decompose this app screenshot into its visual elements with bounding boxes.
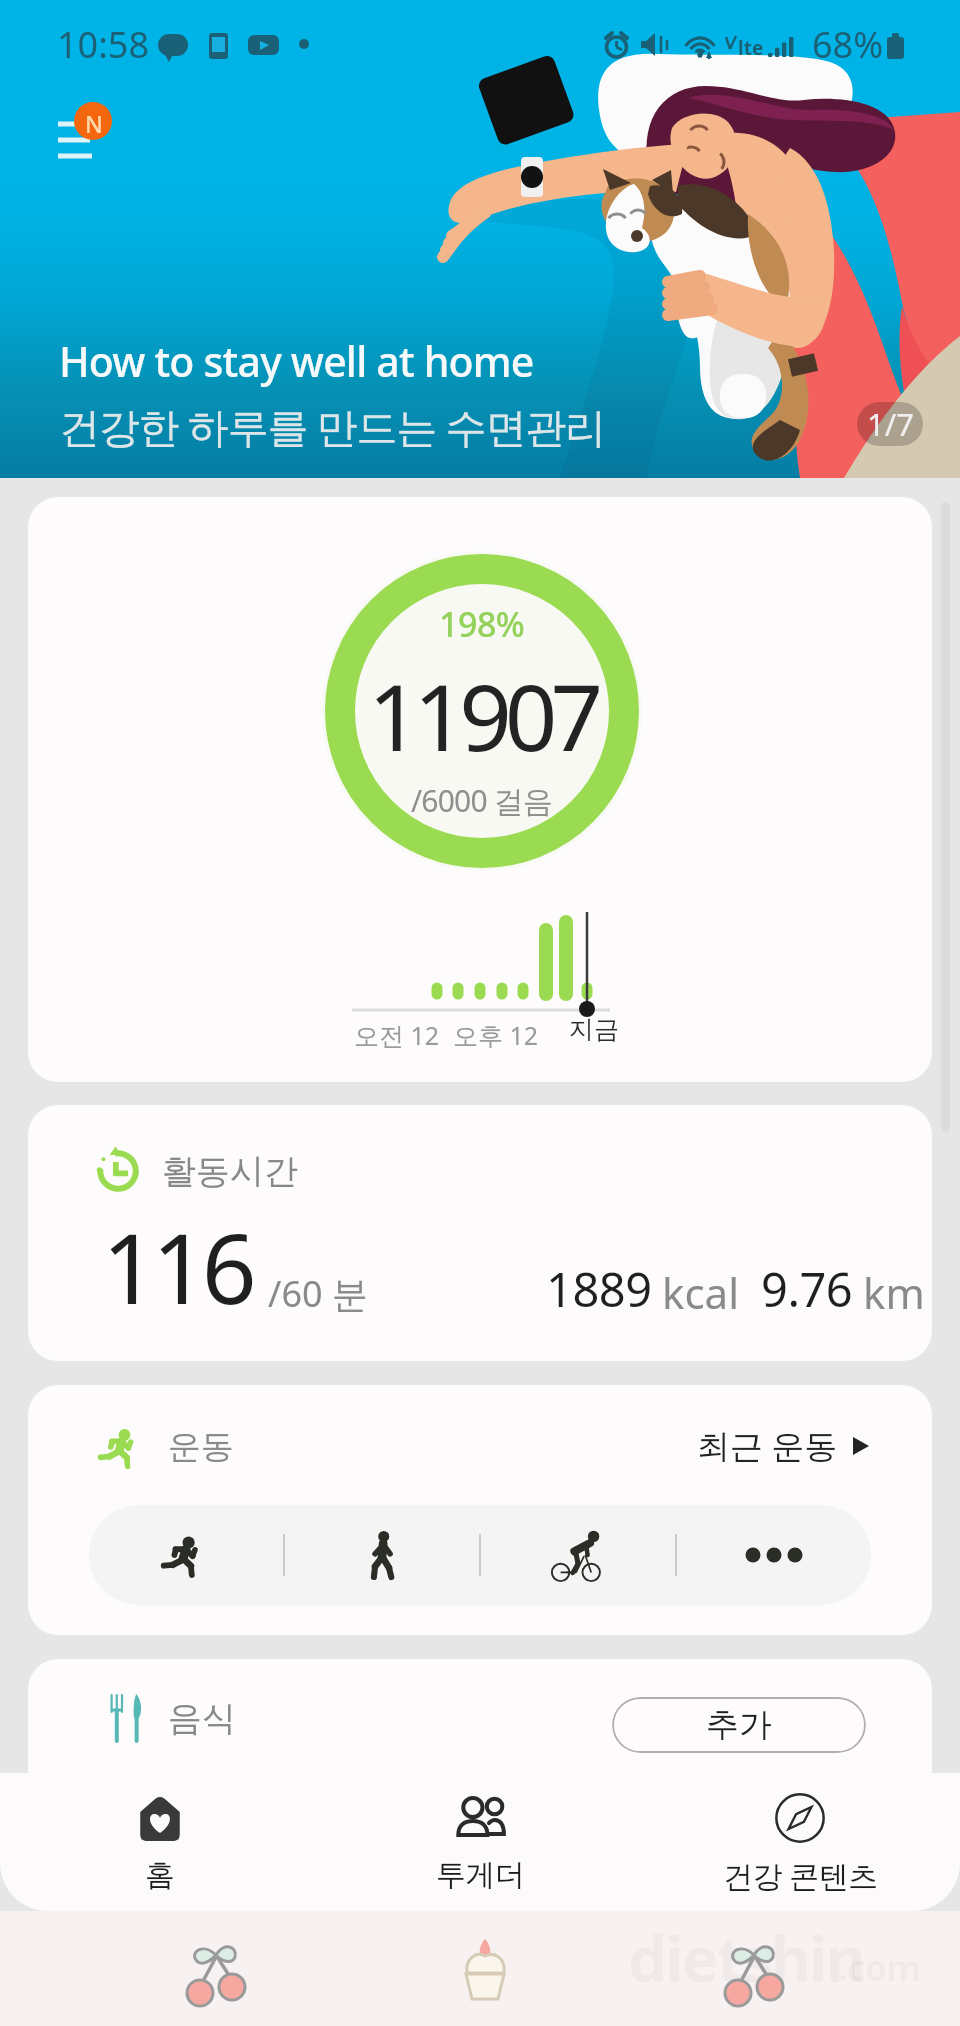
button[interactable]: 건강 콘텐츠 [640, 1773, 960, 1911]
staticText: 9.76 [761, 1257, 853, 1321]
staticText: 116 [102, 1201, 252, 1332]
button[interactable]: 투게더 [320, 1773, 640, 1911]
staticText: 건강 콘텐츠 [723, 1855, 878, 1896]
button[interactable]: Cycling [481, 1505, 675, 1605]
button[interactable]: Steps [325, 554, 639, 868]
staticText: 198% [439, 601, 525, 647]
staticText: 68% [812, 20, 884, 69]
button[interactable]: Running [89, 1505, 283, 1605]
button[interactable]: 추가 [612, 1697, 866, 1753]
staticText: 11907 [368, 653, 597, 778]
staticText: 최근 운동 [697, 1423, 838, 1468]
staticText: 추가 [706, 1704, 772, 1746]
staticText: 투게더 [436, 1856, 525, 1894]
staticText: 홈 [145, 1856, 175, 1894]
staticText: km [863, 1264, 925, 1321]
button[interactable]: Walking [285, 1505, 479, 1605]
staticText: 오전 12 [354, 1018, 440, 1052]
staticText: dietshin [628, 1916, 864, 2000]
staticText: 음식 [168, 1697, 236, 1740]
button[interactable]: 홈 [0, 1773, 320, 1911]
staticText: 지금 [569, 1014, 619, 1045]
staticText: 운동 [168, 1426, 234, 1468]
staticText: How to stay well at home [59, 333, 534, 389]
staticText: lte [738, 35, 764, 61]
button[interactable]: How to stay well at home - 건강한 하루를 만드는 수… [0, 0, 960, 478]
button[interactable]: More exercises [677, 1505, 871, 1605]
staticText: 1889 [546, 1257, 652, 1321]
staticText: kcal [662, 1264, 739, 1321]
staticText: /60 분 [268, 1269, 368, 1318]
button[interactable]: Menu [40, 90, 130, 174]
staticText: .com [838, 1943, 921, 1992]
staticText: N [85, 108, 103, 139]
button[interactable]: 활동시간 116 / 60 분 [28, 1105, 932, 1361]
staticText: 오후 12 [453, 1018, 539, 1052]
staticText: 1/7 [867, 403, 914, 445]
staticText: 10:58 [57, 20, 150, 69]
staticText: 활동시간 [162, 1150, 298, 1193]
staticText: 건강한 하루를 만드는 수면관리 [59, 398, 605, 454]
staticText: /6000 걸음 [411, 780, 553, 821]
button[interactable]: 최근 운동 [691, 1417, 878, 1474]
